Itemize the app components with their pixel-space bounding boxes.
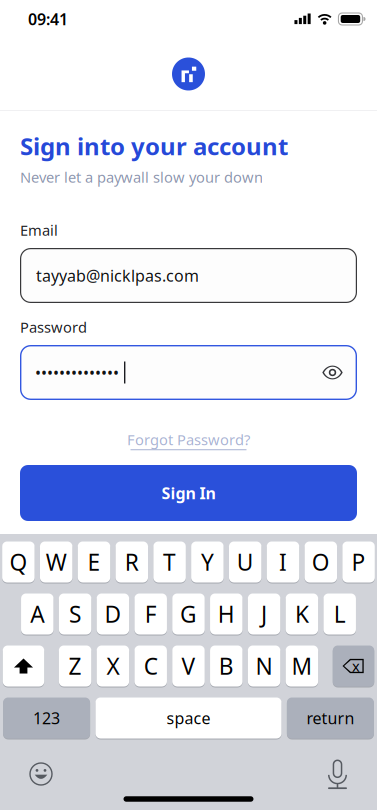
staticText: X	[106, 651, 119, 681]
staticText: Sign In	[161, 482, 215, 504]
staticText: D	[104, 599, 121, 629]
staticText: N	[256, 651, 273, 681]
button[interactable]: M	[286, 645, 318, 687]
staticText: W	[46, 547, 67, 577]
staticText: E	[87, 547, 100, 577]
staticText: K	[295, 599, 309, 629]
staticText: L	[334, 599, 346, 629]
button[interactable]: C	[134, 645, 167, 687]
button[interactable]: S	[59, 593, 91, 635]
staticText: H	[218, 599, 235, 629]
staticText: G	[180, 599, 197, 629]
button[interactable]: L	[323, 593, 356, 635]
button[interactable]: X	[97, 645, 129, 687]
button[interactable]: Shift	[3, 645, 44, 687]
button[interactable]: T	[153, 541, 186, 583]
staticText: V	[181, 651, 195, 681]
staticText: P	[352, 547, 366, 577]
button[interactable]: Q	[2, 541, 35, 583]
button[interactable]: O	[305, 541, 337, 583]
button[interactable]: 123	[3, 697, 90, 739]
button[interactable]: Y	[191, 541, 224, 583]
staticText: U	[237, 547, 254, 577]
staticText: Never let a paywall slow your down	[20, 167, 263, 187]
button[interactable]: W	[40, 541, 72, 583]
staticText: M	[291, 651, 312, 681]
button[interactable]: B	[210, 645, 242, 687]
button[interactable]: Forgot Password?	[108, 425, 268, 455]
staticText: S	[69, 599, 81, 629]
staticText: 09:41	[28, 8, 68, 30]
button[interactable]: U	[229, 541, 261, 583]
button[interactable]: Dictation	[320, 754, 354, 796]
staticText: return	[306, 707, 354, 729]
button[interactable]: Show password	[322, 364, 343, 381]
staticText: Forgot Password?	[127, 430, 250, 449]
button[interactable]: G	[172, 593, 205, 635]
button[interactable]: A	[21, 593, 54, 635]
button[interactable]: return	[287, 697, 374, 739]
button[interactable]: D	[97, 593, 129, 635]
staticText: x	[352, 656, 360, 676]
button[interactable]: V	[172, 645, 205, 687]
button[interactable]: Delete	[333, 645, 374, 687]
button[interactable]: H	[210, 593, 243, 635]
staticText: Password	[20, 317, 87, 337]
staticText: Sign into your account	[20, 130, 288, 162]
button[interactable]: R	[115, 541, 148, 583]
staticText: C	[144, 651, 158, 681]
button[interactable]: Emoji keyboard	[23, 756, 59, 792]
button[interactable]: N	[248, 645, 280, 687]
button[interactable]: space	[95, 697, 281, 739]
button[interactable]: E	[78, 541, 110, 583]
staticText: Email	[20, 220, 58, 240]
button[interactable]: I	[267, 541, 299, 583]
button[interactable]: F	[134, 593, 167, 635]
staticText: J	[261, 599, 267, 629]
staticText: Y	[201, 547, 214, 577]
staticText: 123	[33, 707, 60, 729]
staticText: tayyab@nicklpas.com	[36, 265, 199, 286]
staticText: ••••••••••••••	[35, 362, 119, 383]
button[interactable]: J	[248, 593, 280, 635]
staticText: B	[219, 651, 234, 681]
staticText: T	[163, 547, 176, 577]
button[interactable]: Z	[59, 645, 91, 687]
staticText: Z	[69, 651, 82, 681]
staticText: I	[279, 547, 287, 577]
staticText: space	[166, 707, 210, 729]
staticText: O	[312, 547, 330, 577]
staticText: F	[145, 599, 157, 629]
staticText: A	[30, 599, 44, 629]
button[interactable]: Sign In	[20, 465, 357, 521]
button[interactable]: K	[286, 593, 318, 635]
staticText: R	[125, 547, 139, 577]
button[interactable]: P	[342, 541, 375, 583]
staticText: Q	[9, 547, 27, 577]
